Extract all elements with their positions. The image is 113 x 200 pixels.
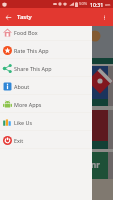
staticText: Food Box <box>14 29 38 36</box>
button[interactable]: More options <box>95 8 113 26</box>
button[interactable]: Food Box <box>0 23 92 41</box>
staticText: Tasty <box>17 13 32 21</box>
staticText: More Apps <box>14 101 42 108</box>
staticText: 10:31 <box>90 1 104 8</box>
staticText: 50% <box>79 1 88 7</box>
button[interactable]: Rate This App <box>0 41 92 59</box>
staticText: nr <box>91 159 100 170</box>
button[interactable]: About <box>0 77 92 95</box>
staticText: Exit <box>14 137 24 144</box>
staticText: am <box>105 2 111 7</box>
button[interactable]: More Apps <box>0 95 92 113</box>
button[interactable]: Like Us <box>0 113 92 131</box>
button[interactable]: Exit <box>0 131 92 149</box>
staticText: Like Us <box>14 119 33 126</box>
button[interactable]: Share This App <box>0 59 92 77</box>
staticText: Rate This App <box>14 47 49 54</box>
button[interactable]: Back <box>0 9 16 25</box>
staticText: About <box>14 83 30 90</box>
staticText: Share This App <box>14 65 52 72</box>
